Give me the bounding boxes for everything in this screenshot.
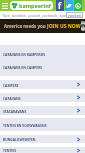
button[interactable]: STACARAVANS xyxy=(0,106,85,115)
button[interactable]: kampeerinfo xyxy=(10,1,53,10)
button[interactable]: TENTEN xyxy=(0,147,85,153)
staticText: TENTEN EN VOUWWAGENS xyxy=(3,123,47,127)
staticText: kampeerinfo xyxy=(19,2,53,9)
staticText: BUNGALOWTENTEN xyxy=(3,137,36,141)
button[interactable]: Advertisement xyxy=(0,19,85,33)
staticText: TENTEN xyxy=(3,148,16,152)
button[interactable]: TENTEN EN VOUWWAGENS xyxy=(0,118,85,131)
staticText: STACARAVANS xyxy=(3,109,27,113)
staticText: America needs you xyxy=(4,23,46,29)
staticText: CAMPERS xyxy=(3,83,19,87)
button[interactable]: CAMPERS xyxy=(0,80,85,89)
staticText: CARAVANS xyxy=(3,96,21,100)
button[interactable]: Twitter xyxy=(65,0,73,11)
staticText: JOIN US NOW xyxy=(47,23,81,30)
button[interactable]: CARAVANS xyxy=(0,93,85,102)
button[interactable]: BUNGALOWTENTEN xyxy=(0,135,85,143)
button[interactable]: WhatsApp xyxy=(74,0,82,11)
button[interactable]: Facebook xyxy=(56,0,64,11)
staticText: CARAVANS EN CAMPERS xyxy=(3,65,43,69)
button[interactable]: CARAVANS EN KAMPEREN xyxy=(0,45,85,76)
staticText: f xyxy=(58,0,62,11)
staticText: zoeken xyxy=(68,13,82,18)
button[interactable]: Menu xyxy=(0,0,10,11)
staticText: CARAVANS EN KAMPEREN xyxy=(3,52,45,56)
button[interactable]: zoeken xyxy=(66,12,83,18)
staticText: Tips, bedden, puzzel, picknick, spelletj… xyxy=(2,13,78,18)
